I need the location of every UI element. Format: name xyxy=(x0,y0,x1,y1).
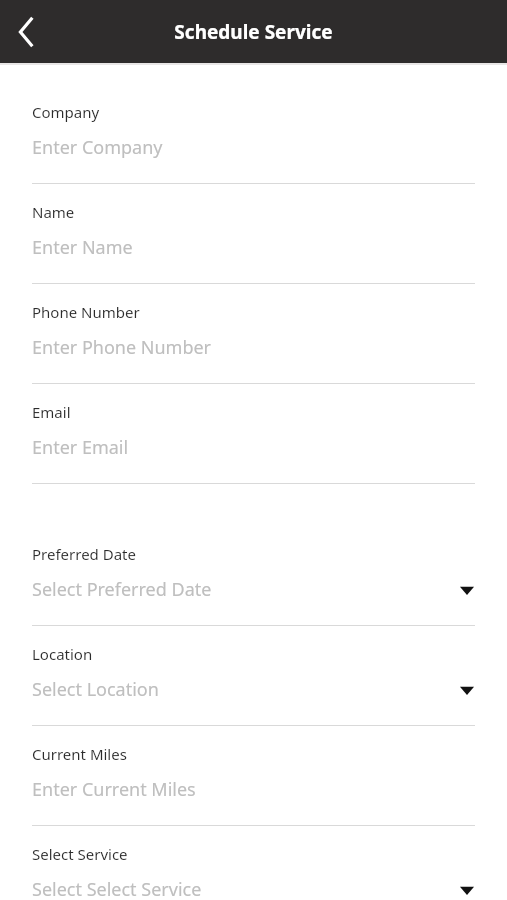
staticText: Current Miles xyxy=(32,744,127,764)
staticText: Name xyxy=(32,202,75,222)
staticText: Enter Email xyxy=(32,435,129,460)
staticText: Enter Name xyxy=(32,235,133,260)
button[interactable]: Preferred Date xyxy=(0,526,507,626)
button[interactable]: Current Miles xyxy=(0,726,507,826)
staticText: Phone Number xyxy=(32,302,140,322)
button[interactable]: Name xyxy=(0,184,507,284)
button[interactable]: Select Service xyxy=(0,826,507,900)
staticText: Enter Phone Number xyxy=(32,335,212,360)
staticText: Select Preferred Date xyxy=(32,577,212,602)
staticText: Location xyxy=(32,644,93,664)
button[interactable]: Email xyxy=(0,384,507,484)
staticText: Preferred Date xyxy=(32,544,136,564)
button[interactable]: Location xyxy=(0,626,507,726)
staticText: Select Location xyxy=(32,677,159,702)
staticText: Enter Current Miles xyxy=(32,777,196,802)
staticText: Schedule Service xyxy=(174,19,333,45)
staticText: Email xyxy=(32,402,71,422)
button[interactable]: Phone Number xyxy=(0,284,507,384)
button[interactable]: Back xyxy=(0,6,52,58)
button[interactable]: Company xyxy=(0,84,507,184)
staticText: Select Service xyxy=(32,844,128,864)
staticText: Company xyxy=(32,102,100,122)
staticText: Select Select Service xyxy=(32,877,202,900)
staticText: Enter Company xyxy=(32,135,163,160)
